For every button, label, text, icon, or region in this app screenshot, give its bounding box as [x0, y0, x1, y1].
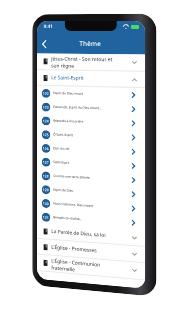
button[interactable]: L'Église - Communion fraternelle: [37, 254, 145, 281]
button[interactable]: 127: [37, 154, 145, 174]
staticText: Saint-Esprit: [53, 160, 132, 168]
staticText: Descends, Esprit du Dieu vivant...: [53, 105, 132, 111]
button[interactable]: 131: [37, 209, 145, 231]
button[interactable]: 123: [37, 99, 145, 117]
staticText: Esprit de Dieu: [53, 188, 132, 196]
staticText: 127: [43, 160, 49, 165]
staticText: Comme une terre altérée: [53, 174, 132, 182]
staticText: 125: [43, 132, 49, 137]
button[interactable]: 126: [37, 141, 145, 159]
button[interactable]: 124: [37, 113, 145, 131]
staticText: 130: [43, 201, 49, 206]
staticText: 126: [43, 146, 49, 151]
staticText: La Parole de Dieu, sa loi: [51, 228, 132, 241]
button[interactable]: 125: [37, 127, 145, 145]
staticText: 128: [43, 173, 49, 179]
button[interactable]: Jésus-Christ - Son retour et son règne: [37, 53, 145, 72]
button[interactable]: 128: [37, 168, 145, 188]
button[interactable]: 130: [37, 196, 145, 216]
button[interactable]: La Parole de Dieu, sa loi: [37, 223, 145, 247]
staticText: L'Église - Communion fraternelle: [51, 258, 132, 277]
staticText: Remplis-toi maître...: [53, 215, 132, 225]
button[interactable]: 122: [37, 86, 145, 102]
button[interactable]: Le Saint-Esprit: [37, 70, 145, 88]
staticText: 122: [43, 91, 49, 96]
button[interactable]: 129: [37, 182, 145, 202]
staticText: Réponds à ma prière: [53, 119, 132, 125]
staticText: 9:41: [44, 23, 53, 30]
staticText: 129: [43, 187, 49, 192]
staticText: Esprit du Dieu vivant: [53, 91, 132, 97]
staticText: Jésus-Christ - Son retour et son règne: [51, 55, 132, 69]
button[interactable]: L'Église - Promesses: [37, 239, 145, 263]
staticText: Don du ciel: [53, 146, 132, 154]
staticText: 131: [43, 215, 49, 220]
staticText: L'Église - Promesses: [51, 244, 132, 257]
staticText: Thème: [79, 39, 102, 48]
staticText: Ô Saint-Esprit: [53, 132, 132, 140]
staticText: Nous t'adorons, Dieu vivant: [53, 201, 132, 210]
staticText: Le Saint-Esprit: [51, 74, 132, 83]
button[interactable]: Back: [37, 35, 50, 53]
staticText: 124: [43, 118, 49, 123]
staticText: 123: [43, 105, 49, 110]
